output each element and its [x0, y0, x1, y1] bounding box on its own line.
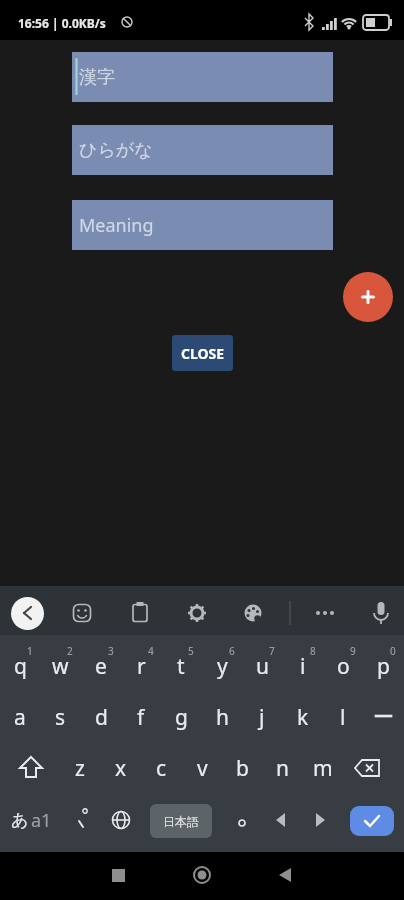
button[interactable]: 日本語 [150, 804, 212, 838]
staticText: p [377, 652, 390, 681]
staticText: 1 [27, 644, 33, 658]
staticText: j [259, 703, 265, 732]
staticText: r [137, 652, 146, 681]
staticText: Meaning [79, 213, 154, 238]
staticText: CLOSE [181, 344, 225, 363]
button[interactable] [343, 272, 393, 322]
staticText: 7 [269, 644, 275, 658]
staticText: a [14, 703, 26, 732]
staticText: c [156, 754, 167, 783]
staticText: 2 [67, 644, 73, 658]
staticText: 9 [350, 644, 356, 658]
button[interactable]: Meaning [72, 200, 333, 250]
staticText: d [95, 703, 108, 732]
staticText: g [175, 703, 188, 732]
staticText: k [297, 703, 309, 732]
staticText: 日本語 [163, 814, 199, 829]
staticText: 0 [390, 644, 396, 658]
staticText: ー [373, 704, 394, 730]
staticText: 6 [229, 644, 235, 658]
staticText: l [340, 703, 346, 732]
button[interactable] [0, 852, 134, 900]
staticText: あ [11, 810, 29, 831]
staticText: y [217, 652, 228, 681]
button[interactable] [134, 852, 269, 900]
button[interactable] [269, 852, 404, 900]
button[interactable]: ひらがな [72, 125, 333, 175]
staticText: n [276, 754, 289, 783]
staticText: 5 [188, 644, 194, 658]
staticText: u [256, 652, 269, 681]
staticText: q [14, 652, 27, 681]
staticText: i [300, 652, 306, 681]
staticText: t [177, 652, 185, 681]
staticText: 16:56 | 0.0KB/s [18, 15, 106, 31]
staticText: 3 [108, 644, 114, 658]
staticText: o [337, 652, 350, 681]
staticText: h [216, 703, 229, 732]
staticText: m [313, 754, 333, 783]
staticText: b [236, 754, 249, 783]
staticText: e [95, 652, 107, 681]
button[interactable]: 漢字 [72, 52, 333, 102]
button[interactable] [11, 597, 44, 630]
staticText: x [115, 754, 127, 783]
staticText: ひらがな [79, 139, 153, 162]
staticText: s [55, 703, 66, 732]
button[interactable] [350, 806, 394, 836]
staticText: v [197, 754, 208, 783]
staticText: z [75, 754, 85, 783]
staticText: w [52, 652, 69, 681]
staticText: f [137, 703, 145, 732]
staticText: a1 [31, 808, 52, 833]
button[interactable]: CLOSE [172, 335, 233, 371]
staticText: 8 [310, 644, 316, 658]
staticText: 4 [148, 644, 154, 658]
staticText: 漢字 [79, 66, 115, 89]
